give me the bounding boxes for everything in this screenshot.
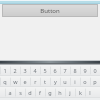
button[interactable]: 3	[20, 65, 30, 76]
button[interactable]: p	[90, 76, 100, 87]
staticText: y	[54, 78, 57, 85]
staticText: d	[28, 89, 32, 96]
button[interactable]: e	[20, 76, 30, 87]
button[interactable]: q	[0, 76, 10, 87]
button[interactable]: 2	[10, 65, 20, 76]
button[interactable]: d	[25, 87, 35, 98]
staticText: e	[23, 78, 27, 85]
staticText: p	[93, 78, 97, 85]
button[interactable]: u	[60, 76, 70, 87]
staticText: r	[34, 78, 37, 85]
staticText: 5	[43, 67, 47, 74]
staticText: j	[69, 89, 71, 96]
button[interactable]: t	[40, 76, 50, 87]
staticText: 4	[33, 67, 37, 74]
button[interactable]: j	[65, 87, 75, 98]
staticText: 3	[23, 67, 27, 74]
button[interactable]: k	[75, 87, 85, 98]
staticText: 9	[83, 67, 87, 74]
staticText: i	[74, 78, 76, 85]
staticText: s	[19, 89, 22, 96]
button[interactable]: w	[10, 76, 20, 87]
staticText: w	[13, 78, 18, 85]
staticText: a	[8, 89, 12, 96]
button[interactable]: Button	[2, 4, 98, 17]
button[interactable]: s	[15, 87, 25, 98]
button[interactable]: o	[80, 76, 90, 87]
button[interactable]: 8	[70, 65, 80, 76]
button[interactable]: 4	[30, 65, 40, 76]
staticText: 1	[3, 67, 7, 74]
staticText: h	[58, 89, 62, 96]
button[interactable]: f	[35, 87, 45, 98]
staticText: q	[3, 78, 7, 85]
button[interactable]: y	[50, 76, 60, 87]
button[interactable]: 1	[0, 65, 10, 76]
staticText: 0	[93, 67, 97, 74]
staticText: 7	[63, 67, 67, 74]
button[interactable]: 6	[50, 65, 60, 76]
button[interactable]: g	[45, 87, 55, 98]
button[interactable]: 9	[80, 65, 90, 76]
staticText: g	[48, 89, 52, 96]
staticText: 6	[53, 67, 57, 74]
button[interactable]: r	[30, 76, 40, 87]
button[interactable]: l	[85, 87, 95, 98]
button[interactable]: 7	[60, 65, 70, 76]
staticText: Button	[40, 7, 60, 15]
staticText: f	[39, 89, 41, 96]
staticText: 8	[73, 67, 77, 74]
button[interactable]: 5	[40, 65, 50, 76]
button[interactable]: i	[70, 76, 80, 87]
button[interactable]: a	[5, 87, 15, 98]
staticText: l	[89, 89, 91, 96]
staticText: k	[79, 89, 82, 96]
staticText: o	[83, 78, 87, 85]
staticText: u	[63, 78, 67, 85]
staticText: 2	[13, 67, 17, 74]
staticText: t	[44, 78, 46, 85]
button[interactable]: h	[55, 87, 65, 98]
button[interactable]: 0	[90, 65, 100, 76]
